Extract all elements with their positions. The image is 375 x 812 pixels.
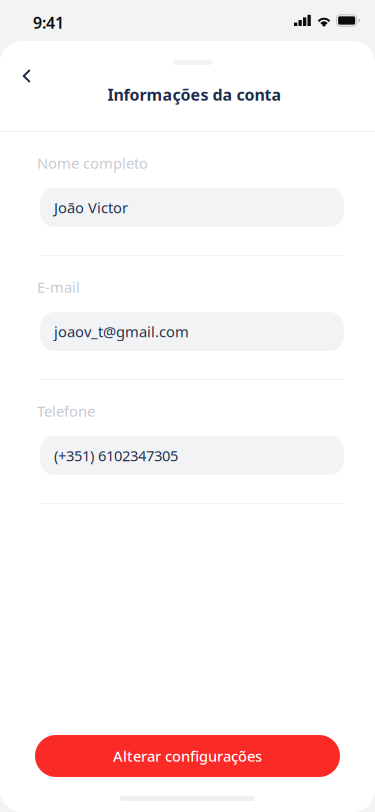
- staticText: joaov_t@gmail.com: [54, 322, 189, 341]
- staticText: Nome completo: [37, 153, 148, 173]
- staticText: Telefone: [37, 401, 95, 421]
- button[interactable]: Alterar configurações: [0, 735, 375, 777]
- staticText: (+351) 6102347305: [54, 446, 178, 465]
- staticText: Informações da conta: [107, 84, 281, 105]
- button[interactable]: Back: [7, 65, 47, 87]
- staticText: 9:41: [33, 12, 64, 33]
- staticText: João Victor: [54, 198, 128, 217]
- staticText: E-mail: [37, 277, 80, 297]
- staticText: Alterar configurações: [113, 746, 262, 766]
